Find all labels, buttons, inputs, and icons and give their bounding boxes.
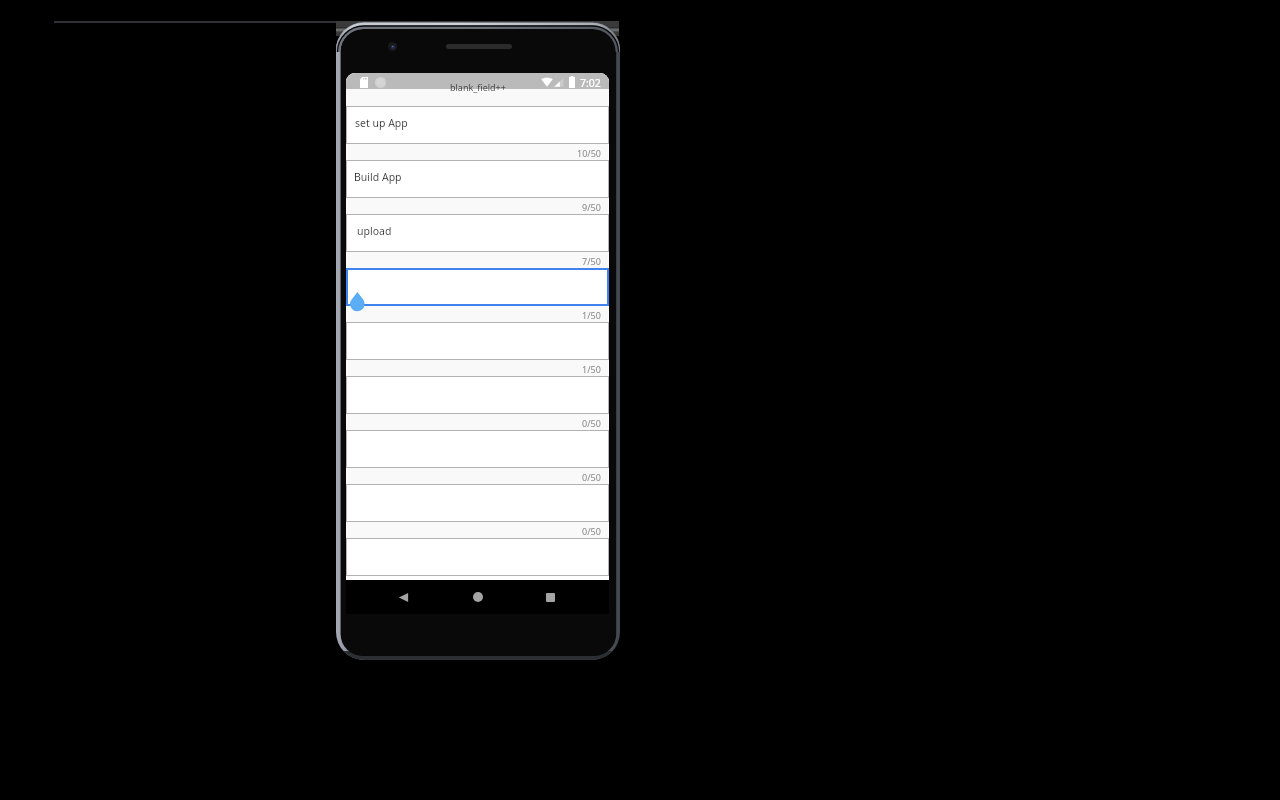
- button[interactable]: set up App: [346, 106, 609, 144]
- staticText: 7:02: [580, 76, 601, 90]
- button[interactable]: [346, 430, 609, 468]
- staticText: Build App: [354, 170, 402, 184]
- staticText: set up App: [355, 116, 408, 130]
- button[interactable]: Recent apps: [538, 585, 562, 609]
- button[interactable]: Home: [466, 585, 490, 609]
- button[interactable]: Back: [391, 585, 415, 609]
- button[interactable]: [346, 484, 609, 522]
- staticText: 1/50: [582, 363, 601, 375]
- staticText: 7/50: [582, 255, 601, 267]
- staticText: upload: [357, 224, 392, 238]
- button[interactable]: [346, 268, 609, 306]
- staticText: 1/50: [582, 309, 601, 321]
- button[interactable]: [346, 322, 609, 360]
- staticText: 0/50: [582, 417, 601, 429]
- staticText: 0/50: [582, 471, 601, 483]
- staticText: 0/50: [582, 525, 601, 537]
- staticText: 9/50: [582, 201, 601, 213]
- button[interactable]: [346, 538, 609, 576]
- staticText: 10/50: [577, 147, 601, 159]
- button[interactable]: upload: [346, 214, 609, 252]
- button[interactable]: [346, 376, 609, 414]
- button[interactable]: Build App: [346, 160, 609, 198]
- staticText: blank_field++: [450, 81, 506, 93]
